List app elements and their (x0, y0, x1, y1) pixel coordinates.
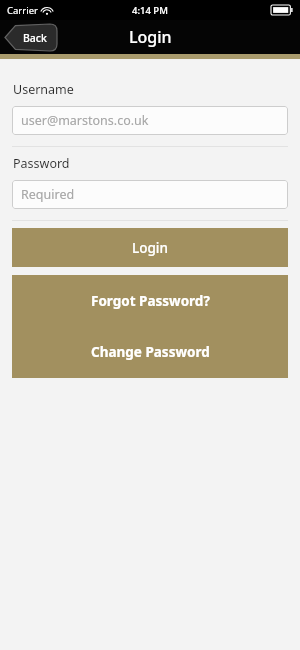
button[interactable]: user@marstons.co.uk (12, 106, 288, 135)
staticText: Change Password (91, 343, 210, 361)
button[interactable]: Change Password (12, 326, 288, 378)
staticText: Back (23, 31, 47, 45)
button[interactable]: Back (5, 24, 57, 51)
staticText: user@marstons.co.uk (21, 112, 149, 129)
staticText: 4:14 PM (132, 4, 168, 17)
button[interactable]: Forgot Password? (12, 275, 288, 326)
button[interactable]: Login (12, 228, 288, 267)
staticText: Password (13, 155, 70, 172)
staticText: Carrier (7, 4, 38, 17)
staticText: Login (129, 26, 172, 48)
staticText: Required (21, 186, 75, 203)
staticText: Username (13, 81, 74, 98)
staticText: Login (132, 239, 168, 257)
staticText: Forgot Password? (91, 292, 210, 310)
button[interactable]: Required (12, 180, 288, 209)
